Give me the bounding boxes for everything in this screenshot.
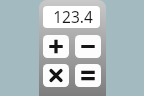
button[interactable]: minus <box>75 35 101 58</box>
button[interactable]: plus <box>43 35 69 58</box>
staticText: 123.4 <box>53 6 93 27</box>
button[interactable]: multiply <box>43 64 69 87</box>
button[interactable]: equals <box>75 64 101 87</box>
